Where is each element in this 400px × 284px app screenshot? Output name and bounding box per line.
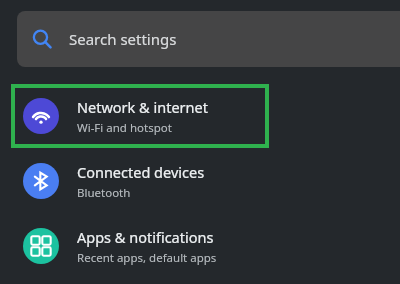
staticText: Search settings bbox=[69, 29, 177, 49]
button[interactable]: Search settings bbox=[17, 11, 400, 67]
button[interactable]: Connected devices bbox=[11, 149, 269, 213]
staticText: Apps & notifications bbox=[77, 227, 214, 247]
button[interactable]: Apps & notifications bbox=[11, 214, 269, 278]
staticText: Bluetooth bbox=[77, 185, 131, 201]
staticText: Wi-Fi and hotspot bbox=[77, 120, 172, 136]
staticText: Network & internet bbox=[77, 97, 208, 117]
staticText: Connected devices bbox=[77, 162, 205, 182]
button[interactable]: Network & internet bbox=[11, 84, 269, 148]
staticText: Recent apps, default apps bbox=[77, 250, 217, 266]
